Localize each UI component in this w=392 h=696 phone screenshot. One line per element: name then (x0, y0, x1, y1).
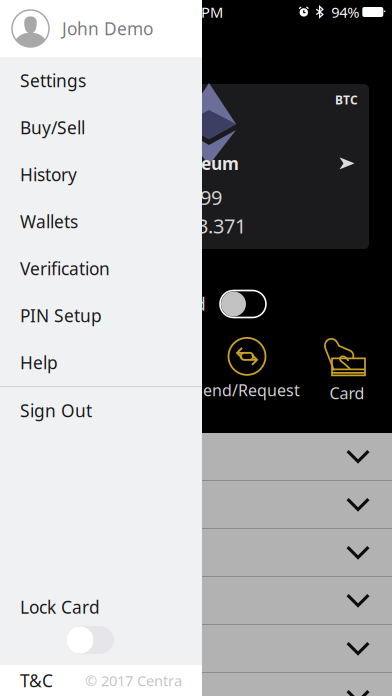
staticText: Help (20, 351, 58, 374)
staticText: Buy/Sell (20, 116, 85, 139)
button[interactable]: Transaction (0, 433, 392, 480)
button[interactable]: Rewards (0, 529, 392, 576)
staticText: Exchange (20, 589, 100, 612)
button[interactable]: Settings (0, 57, 202, 104)
staticText: Verification (20, 257, 110, 280)
staticText: T&C (20, 669, 53, 692)
button[interactable]: Exchange (0, 577, 392, 624)
staticText: Last 3 years (20, 685, 117, 696)
staticText: PIN Setup (20, 304, 102, 327)
button[interactable]: Help (0, 339, 202, 386)
button[interactable]: PIN Setup (0, 292, 202, 339)
button[interactable]: Last 6 months (0, 625, 392, 672)
staticText: History (20, 163, 77, 186)
staticText: © 2017 Centra (85, 671, 182, 690)
staticText: Settings (20, 69, 86, 92)
staticText: 4:38 PM (169, 2, 223, 22)
button[interactable]: Buy/Sell (0, 104, 202, 151)
button[interactable]: Last 3 years (0, 673, 392, 696)
button[interactable]: Wallets (0, 198, 202, 245)
button[interactable]: Card (277, 334, 392, 404)
staticText: 0.999 (173, 184, 222, 210)
button[interactable]: Wallet (0, 481, 392, 528)
button[interactable]: Sign Out (0, 387, 202, 434)
staticText: Lock Card (20, 595, 100, 618)
staticText: 94% (331, 2, 359, 22)
button[interactable]: Verification (0, 245, 202, 292)
button[interactable]: Lock card toggle (220, 290, 266, 317)
staticText: $3.371 (186, 212, 246, 239)
button[interactable]: History (0, 151, 202, 198)
button[interactable]: John Demo (0, 0, 202, 57)
staticText: Lock Card (126, 292, 206, 315)
button[interactable]: T&C (20, 669, 53, 692)
staticText: Last 6 months (20, 637, 135, 660)
staticText: John Demo (62, 17, 153, 40)
button[interactable]: Send/Request (177, 334, 317, 404)
staticText: Ethereum (155, 152, 239, 175)
staticText: Wallets (20, 210, 78, 233)
staticText: Sign Out (20, 399, 92, 422)
staticText: BTC (335, 92, 358, 108)
button[interactable]: Lock Card (66, 626, 114, 654)
staticText: Card (329, 382, 364, 404)
staticText: Send/Request (194, 379, 300, 401)
